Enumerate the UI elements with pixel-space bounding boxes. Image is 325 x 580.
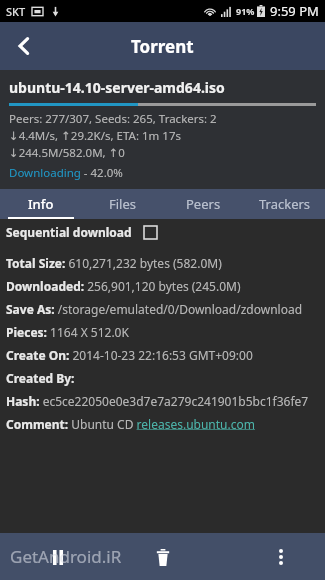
button[interactable]: Trackers [244, 189, 325, 219]
staticText: Created By: [6, 370, 75, 386]
staticText: Downloading - 42.0% [9, 165, 123, 181]
button[interactable]: Info [0, 189, 82, 219]
staticText: Peers [186, 195, 221, 213]
button[interactable]: Sequential download [0, 219, 325, 245]
staticText: ↓244.5M/582.0M, ↑0 [9, 145, 125, 161]
staticText: Pieces: 1164 X 512.0K [6, 324, 129, 340]
staticText: 9:59 PM [270, 2, 319, 20]
staticText: Peers: 277/307, Seeds: 265, Trackers: 2 [9, 111, 217, 127]
button[interactable]: Back [0, 22, 48, 70]
staticText: Hash: ec5ce22050e0e3d7e7a279c241901b5bc1… [6, 393, 309, 409]
staticText: Total Size: 610,271,232 bytes (582.0M) [6, 255, 222, 271]
staticText: GetAndroid.iR [10, 545, 122, 568]
staticText: Files [109, 195, 137, 213]
staticText: Torrent [131, 35, 194, 58]
staticText: Sequential download [6, 224, 132, 240]
staticText: Create On: 2014-10-23 22:16:53 GMT+09:00 [6, 347, 253, 363]
button[interactable]: Peers [163, 189, 244, 219]
staticText: Info [28, 195, 54, 213]
staticText: Comment: Ubuntu CD releases.ubuntu.com [6, 416, 255, 432]
staticText: Trackers [259, 195, 311, 213]
staticText: Downloaded: 256,901,120 bytes (245.0M) [6, 278, 241, 294]
button[interactable]: Delete [140, 534, 186, 580]
staticText: Save As: /storage/emulated/0/Download/zd… [6, 301, 303, 317]
staticText: 91% [236, 5, 255, 17]
button[interactable]: Files [82, 189, 163, 219]
staticText: SKT [6, 4, 26, 19]
staticText: ubuntu-14.10-server-amd64.iso [9, 78, 225, 97]
staticText: ↓4.4M/s, ↑29.2K/s, ETA: 1m 17s [9, 128, 181, 144]
button[interactable]: Pause [36, 535, 80, 579]
button[interactable]: More options [259, 535, 303, 579]
